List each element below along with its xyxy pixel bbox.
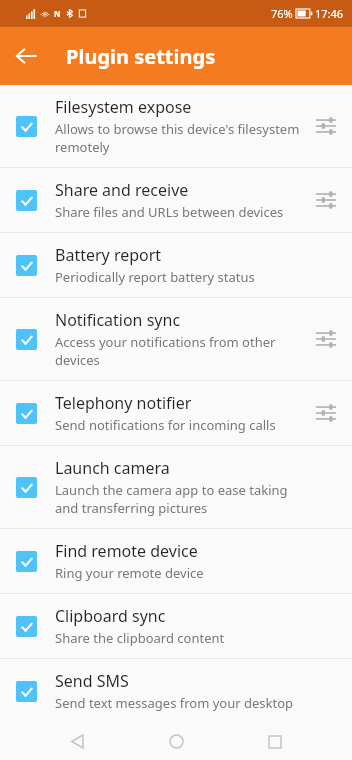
button[interactable]: Enabled	[16, 190, 37, 211]
button[interactable]: Back	[0, 30, 52, 82]
button[interactable]: Enabled	[16, 681, 37, 702]
staticText: Find remote device	[55, 540, 198, 562]
button[interactable]: Enabled	[16, 116, 37, 137]
button[interactable]: Enabled	[0, 529, 352, 593]
staticText: 17:46	[315, 6, 344, 21]
staticText: Send SMS	[55, 670, 129, 692]
staticText: Ring your remote device	[55, 564, 204, 582]
staticText: N	[54, 8, 61, 19]
staticText: Receive notifications	[55, 735, 210, 749]
staticText: 76%	[271, 6, 293, 21]
button[interactable]: Enabled	[0, 594, 352, 658]
button[interactable]: Plugin settings	[310, 397, 342, 429]
button[interactable]: Disabled	[0, 724, 352, 760]
button[interactable]: Enabled	[0, 381, 352, 445]
staticText: Telephony notifier	[55, 392, 192, 414]
staticText: Clipboard sync	[55, 605, 166, 627]
button[interactable]: Enabled	[16, 551, 37, 572]
button[interactable]: Enabled	[0, 233, 352, 297]
button[interactable]: Enabled	[16, 616, 37, 637]
button[interactable]: Enabled	[16, 403, 37, 424]
button[interactable]: Back	[55, 723, 99, 760]
button[interactable]: Plugin settings	[310, 110, 342, 142]
button[interactable]: Enabled	[16, 329, 37, 350]
button[interactable]: Recent apps	[253, 723, 297, 760]
button[interactable]: Enabled	[0, 446, 352, 528]
button[interactable]: Enabled	[16, 477, 37, 498]
staticText: Launch camera	[55, 457, 170, 479]
staticText: Access your notifications from other dev…	[55, 333, 304, 369]
staticText: Battery report	[55, 244, 162, 266]
staticText: Share the clipboard content	[55, 629, 225, 647]
staticText: Share and receive	[55, 179, 189, 201]
button[interactable]: Plugin settings	[310, 184, 342, 216]
button[interactable]: Home	[154, 723, 198, 760]
button[interactable]: Enabled	[0, 659, 352, 723]
staticText: Filesystem expose	[55, 96, 192, 118]
staticText: Launch the camera app to ease taking and…	[55, 481, 304, 517]
button[interactable]: Plugin settings	[310, 323, 342, 355]
staticText: Allows to browse this device's filesyste…	[55, 120, 304, 156]
staticText: Send text messages from your desktop	[55, 694, 294, 712]
button[interactable]: Enabled	[16, 255, 37, 276]
staticText: Plugin settings	[66, 43, 216, 70]
staticText: Notification sync	[55, 309, 181, 331]
button[interactable]: Enabled	[0, 298, 352, 380]
button[interactable]: Enabled	[0, 85, 352, 167]
staticText: Periodically report battery status	[55, 268, 255, 286]
button[interactable]: Enabled	[0, 168, 352, 232]
staticText: Share files and URLs between devices	[55, 203, 284, 221]
staticText: Send notifications for incoming calls	[55, 416, 276, 434]
